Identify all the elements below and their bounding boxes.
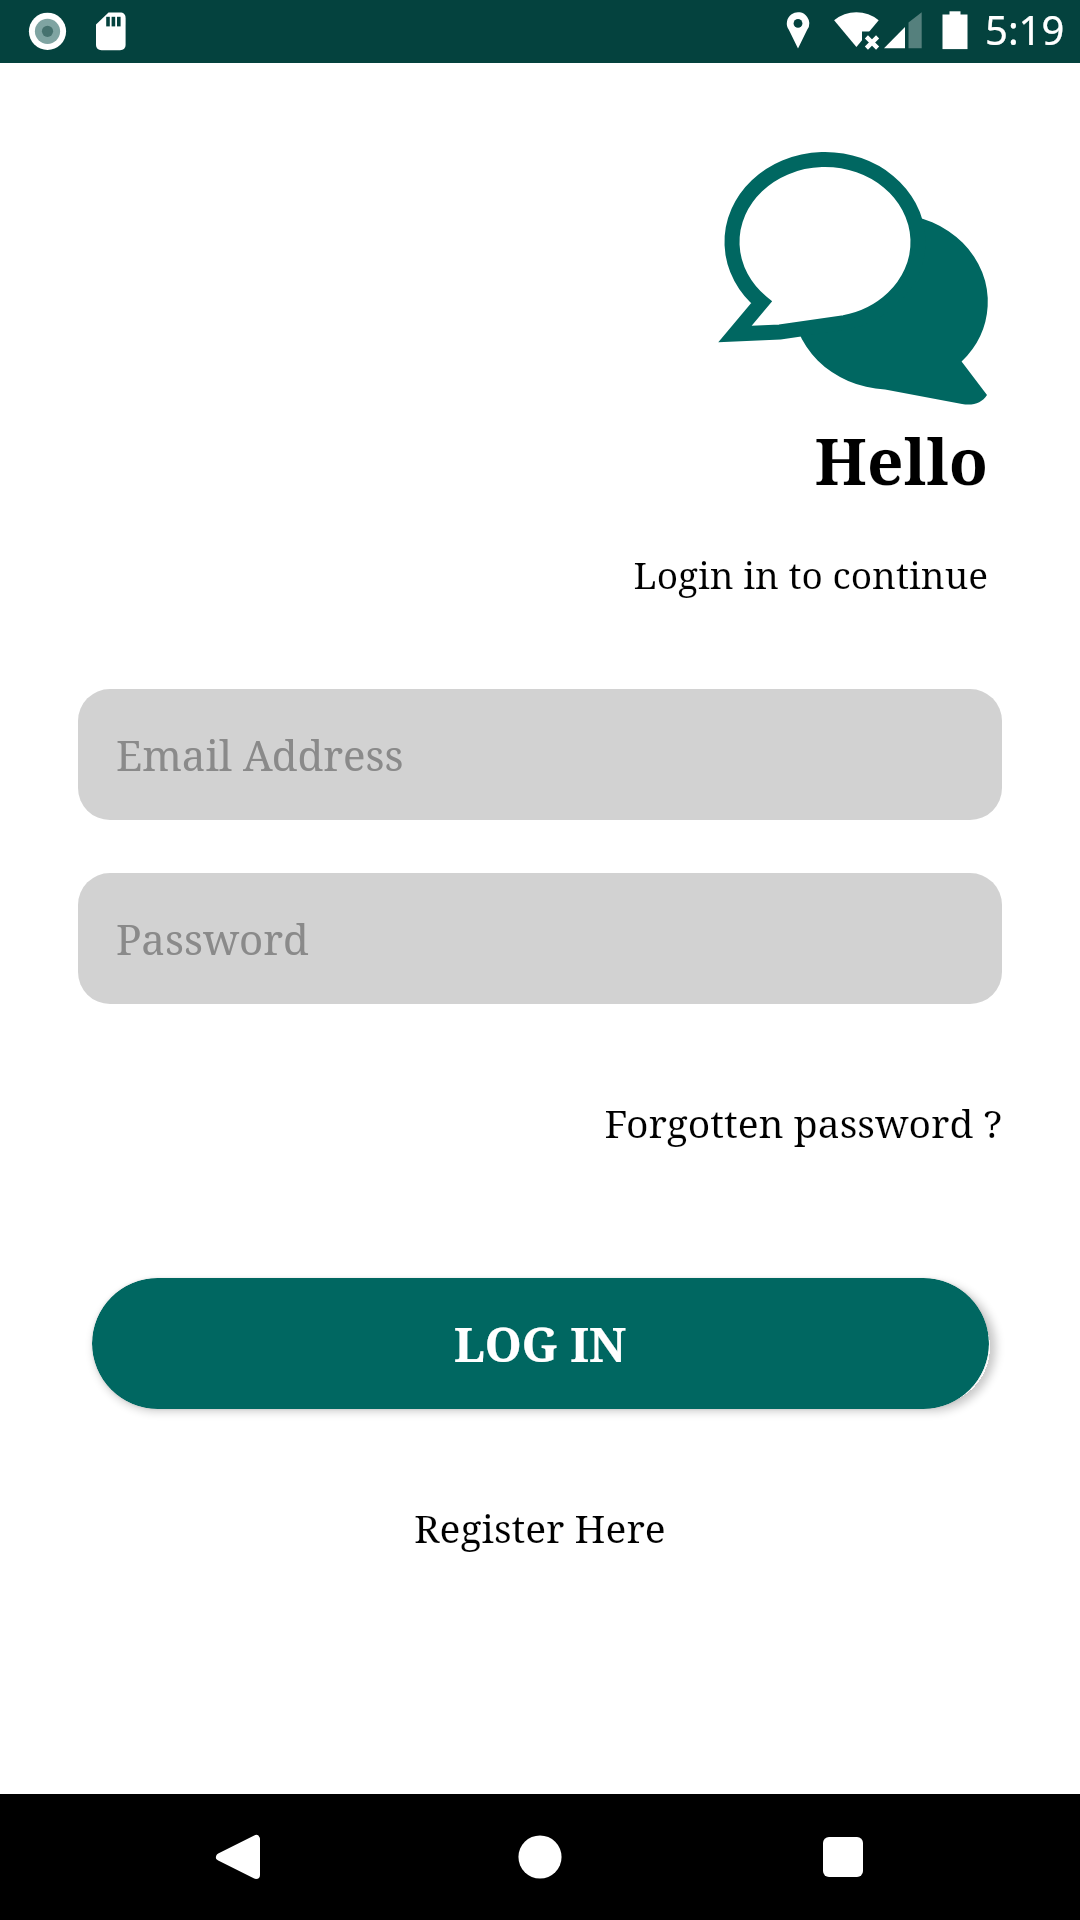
staticText: Email Address bbox=[116, 726, 404, 783]
button[interactable]: Recents bbox=[778, 1794, 908, 1920]
staticText: Register Here bbox=[414, 1501, 666, 1554]
staticText: Hello bbox=[0, 417, 988, 504]
staticText: Login in to continue bbox=[0, 549, 988, 599]
button[interactable]: Password bbox=[78, 873, 1002, 1004]
staticText: LOG IN bbox=[454, 1312, 627, 1376]
button[interactable]: Forgotten password ? bbox=[596, 1088, 1010, 1157]
button[interactable]: Register Here bbox=[398, 1493, 682, 1562]
staticText: Password bbox=[116, 910, 309, 967]
button[interactable]: Back bbox=[173, 1794, 303, 1920]
staticText: Forgotten password ? bbox=[604, 1096, 1002, 1149]
staticText: 5:19 bbox=[985, 2, 1065, 56]
button[interactable]: Home bbox=[475, 1794, 605, 1920]
button[interactable]: LOG IN bbox=[92, 1278, 989, 1409]
button[interactable]: Email Address bbox=[78, 689, 1002, 820]
